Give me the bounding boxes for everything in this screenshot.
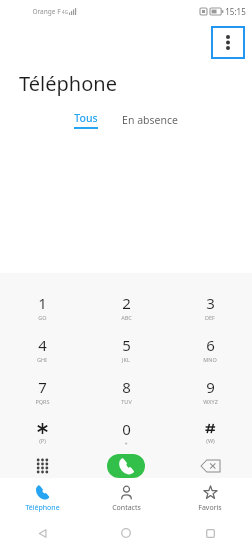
- staticText: Orange F: [32, 7, 61, 16]
- staticText: 9: [206, 377, 215, 397]
- staticText: TUV: [121, 398, 132, 405]
- staticText: Téléphone: [25, 503, 60, 513]
- button[interactable]: Téléphone: [0, 478, 84, 520]
- button[interactable]: Keypad: [0, 454, 84, 478]
- button[interactable]: Recent apps: [168, 520, 252, 546]
- button[interactable]: Tous: [66, 111, 106, 129]
- button[interactable]: (W): [168, 412, 252, 454]
- staticText: PQRS: [35, 398, 50, 405]
- staticText: Contacts: [112, 503, 141, 513]
- staticText: 5: [122, 335, 131, 355]
- button[interactable]: 1: [0, 286, 84, 328]
- staticText: Favoris: [198, 503, 222, 513]
- staticText: En absence: [122, 113, 178, 127]
- staticText: DEF: [205, 314, 215, 321]
- button[interactable]: 3: [168, 286, 252, 328]
- staticText: WXYZ: [203, 398, 218, 405]
- staticText: Téléphone: [19, 70, 117, 97]
- button[interactable]: Call: [107, 454, 145, 478]
- staticText: 7: [38, 377, 47, 397]
- button[interactable]: En absence: [114, 111, 186, 129]
- staticText: 1: [38, 293, 47, 313]
- button[interactable]: 8: [84, 370, 168, 412]
- staticText: JKL: [122, 356, 130, 363]
- button[interactable]: More options: [213, 28, 243, 57]
- button[interactable]: (P): [0, 412, 84, 454]
- staticText: (P): [39, 437, 46, 444]
- button[interactable]: Home: [84, 520, 168, 546]
- button[interactable]: Backspace: [168, 454, 252, 478]
- staticText: Tous: [74, 111, 98, 125]
- button[interactable]: 2: [84, 286, 168, 328]
- button[interactable]: 4: [0, 328, 84, 370]
- staticText: GHI: [37, 356, 47, 363]
- staticText: 4G: [62, 9, 68, 15]
- button[interactable]: 0: [84, 412, 168, 454]
- button[interactable]: 7: [0, 370, 84, 412]
- staticText: 0: [122, 419, 131, 439]
- button[interactable]: Back: [0, 520, 84, 546]
- staticText: 3: [206, 293, 215, 313]
- staticText: 15:15: [225, 6, 246, 17]
- staticText: 8: [122, 377, 131, 397]
- staticText: ABC: [121, 314, 132, 321]
- button[interactable]: Contacts: [84, 478, 168, 520]
- button[interactable]: Favoris: [168, 478, 252, 520]
- button[interactable]: 9: [168, 370, 252, 412]
- staticText: MNO: [203, 356, 217, 363]
- staticText: 2: [122, 293, 131, 313]
- staticText: (W): [206, 437, 215, 444]
- button[interactable]: 6: [168, 328, 252, 370]
- staticText: GO: [38, 314, 47, 321]
- staticText: 6: [206, 335, 215, 355]
- staticText: 4: [38, 335, 47, 355]
- staticText: +: [124, 440, 128, 447]
- button[interactable]: 5: [84, 328, 168, 370]
